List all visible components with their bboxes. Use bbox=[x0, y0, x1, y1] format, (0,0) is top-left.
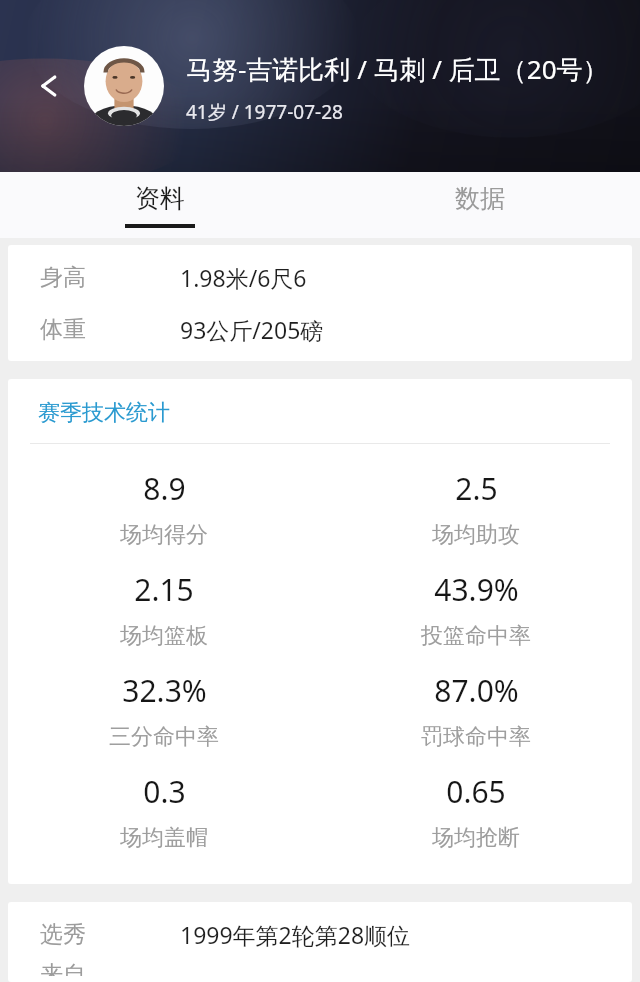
staticText: 0.3 bbox=[143, 771, 186, 812]
staticText: 87.0% bbox=[434, 670, 519, 711]
staticText: 场均助攻 bbox=[432, 521, 520, 549]
staticText: 三分命中率 bbox=[109, 723, 219, 751]
staticText: 罚球命中率 bbox=[421, 723, 531, 751]
staticText: 马努-吉诺比利 / 马刺 / 后卫（20号） bbox=[186, 51, 609, 87]
staticText: 93公斤/205磅 bbox=[180, 314, 324, 345]
staticText: 41岁 / 1977-07-28 bbox=[186, 99, 343, 125]
staticText: 投篮命中率 bbox=[421, 622, 531, 650]
staticText: 来自 bbox=[40, 960, 86, 976]
staticText: 43.9% bbox=[434, 569, 519, 610]
staticText: 身高 bbox=[40, 263, 86, 292]
staticText: 场均盖帽 bbox=[120, 824, 208, 852]
staticText: 场均得分 bbox=[120, 521, 208, 549]
button[interactable]: Back bbox=[22, 58, 78, 114]
staticText: 资料 bbox=[135, 183, 185, 214]
staticText: 2.15 bbox=[134, 569, 194, 610]
button[interactable]: 数据 bbox=[320, 172, 640, 238]
staticText: 1999年第2轮第28顺位 bbox=[180, 919, 411, 950]
staticText: 数据 bbox=[455, 183, 505, 214]
button[interactable]: 资料 bbox=[0, 172, 320, 238]
staticText: 场均篮板 bbox=[120, 622, 208, 650]
staticText: 1.98米/6尺6 bbox=[180, 262, 307, 293]
staticText: 2.5 bbox=[455, 468, 498, 509]
staticText: 赛季技术统计 bbox=[38, 399, 170, 427]
staticText: 体重 bbox=[40, 315, 86, 344]
staticText: 0.65 bbox=[446, 771, 506, 812]
staticText: 场均抢断 bbox=[432, 824, 520, 852]
staticText: 8.9 bbox=[143, 468, 186, 509]
staticText: 选秀 bbox=[40, 920, 86, 949]
staticText: 32.3% bbox=[122, 670, 207, 711]
